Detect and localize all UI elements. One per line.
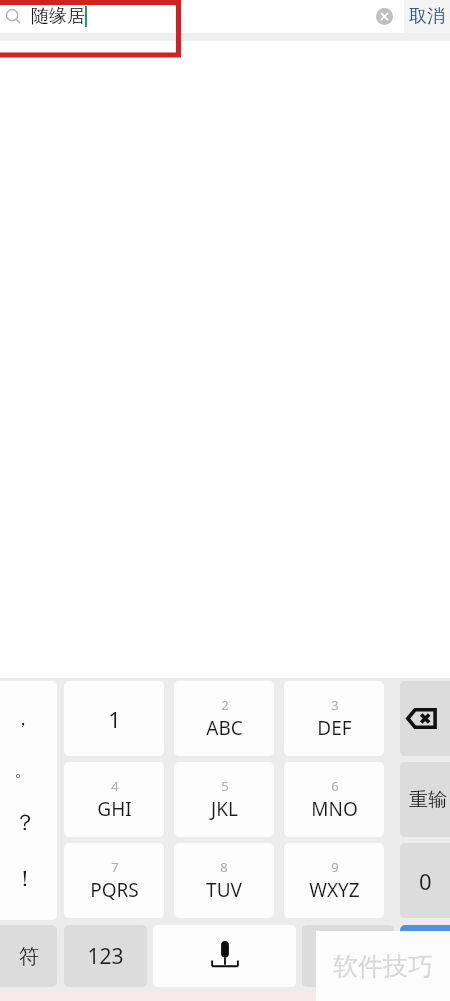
staticText: 3 (331, 696, 339, 714)
button[interactable]: Clear (372, 4, 397, 29)
staticText: 符 (19, 944, 39, 969)
button[interactable]: ， (0, 681, 57, 920)
button[interactable]: 9 (284, 843, 384, 918)
button[interactable]: 4 (64, 762, 164, 837)
button[interactable] (302, 925, 394, 987)
staticText: TUV (206, 877, 242, 903)
staticText: 0 (419, 866, 432, 896)
button[interactable]: 随缘居 (0, 0, 404, 33)
staticText: GHI (97, 796, 132, 822)
staticText: 软件技巧 (333, 951, 433, 982)
button[interactable]: 1 (64, 681, 164, 756)
staticText: 重输 (409, 788, 447, 812)
staticText: 6 (331, 777, 339, 795)
button[interactable]: Enter (400, 925, 450, 987)
staticText: 随缘居 (31, 5, 85, 28)
button[interactable]: 8 (174, 843, 274, 918)
button[interactable]: 取消 (404, 0, 450, 33)
button[interactable]: 0 (400, 843, 450, 918)
button[interactable]: 123 (64, 925, 147, 987)
staticText: 。 (14, 759, 32, 782)
staticText: 2 (221, 696, 229, 714)
button[interactable]: 6 (284, 762, 384, 837)
staticText: JKL (211, 796, 238, 822)
button[interactable]: 5 (174, 762, 274, 837)
staticText: 1 (108, 704, 121, 734)
staticText: ！ (14, 865, 36, 893)
button[interactable]: 7 (64, 843, 164, 918)
button[interactable]: 2 (174, 681, 274, 756)
button[interactable]: 符 (0, 925, 57, 987)
staticText: WXYZ (309, 877, 360, 903)
staticText: 123 (87, 942, 124, 971)
staticText: 8 (220, 858, 228, 876)
staticText: ， (14, 708, 32, 731)
staticText: 9 (331, 858, 339, 876)
staticText: 4 (111, 777, 119, 795)
staticText: ？ (14, 809, 36, 837)
staticText: DEF (317, 715, 352, 741)
staticText: 取消 (409, 5, 445, 28)
staticText: 5 (221, 777, 229, 795)
button[interactable]: Voice input (153, 925, 296, 987)
staticText: ABC (206, 715, 243, 741)
staticText: 7 (111, 858, 119, 876)
staticText: PQRS (90, 877, 139, 903)
button[interactable]: 3 (284, 681, 384, 756)
button[interactable]: Backspace (400, 681, 450, 756)
button[interactable]: 重输 (400, 762, 450, 837)
staticText: MNO (311, 796, 358, 822)
